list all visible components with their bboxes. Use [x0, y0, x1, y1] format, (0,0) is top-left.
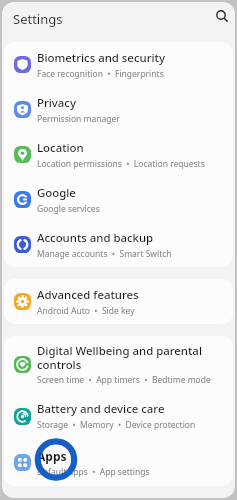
staticText: Advanced features: [37, 287, 139, 303]
staticText: Location permissions • Location requests: [37, 158, 205, 170]
button[interactable]: Google: [4, 177, 233, 222]
staticText: Google services: [37, 203, 100, 215]
button[interactable]: Biometrics and security: [4, 42, 233, 87]
button[interactable]: Apps: [4, 439, 233, 486]
staticText: Accounts and backup: [37, 230, 154, 246]
staticText: Battery and device care: [37, 401, 165, 417]
staticText: Screen time • App timers • Bedtime mode: [37, 374, 211, 386]
staticText: Face recognition • Fingerprints: [37, 68, 164, 80]
staticText: Manage accounts • Smart Switch: [37, 248, 172, 260]
staticText: Default apps • App settings: [37, 466, 150, 478]
staticText: Android Auto • Side key: [37, 305, 135, 317]
staticText: Google: [37, 185, 76, 201]
staticText: Permission manager: [37, 113, 120, 125]
button[interactable]: Accounts and backup: [4, 222, 233, 267]
staticText: Biometrics and security: [37, 50, 165, 66]
staticText: Privacy: [37, 95, 76, 111]
button[interactable]: Privacy: [4, 87, 233, 132]
button[interactable]: Battery and device care: [4, 393, 233, 439]
staticText: Settings: [13, 10, 63, 28]
staticText: Digital Wellbeing and parental controls: [37, 343, 227, 372]
staticText: Apps: [37, 448, 67, 464]
button[interactable]: Advanced features: [4, 279, 233, 324]
button[interactable]: Location: [4, 132, 233, 177]
staticText: Storage • Memory • Device protection: [37, 419, 196, 431]
staticText: Location: [37, 140, 84, 156]
button[interactable]: Digital Wellbeing and parental controls: [4, 336, 233, 393]
button[interactable]: [216, 10, 229, 23]
